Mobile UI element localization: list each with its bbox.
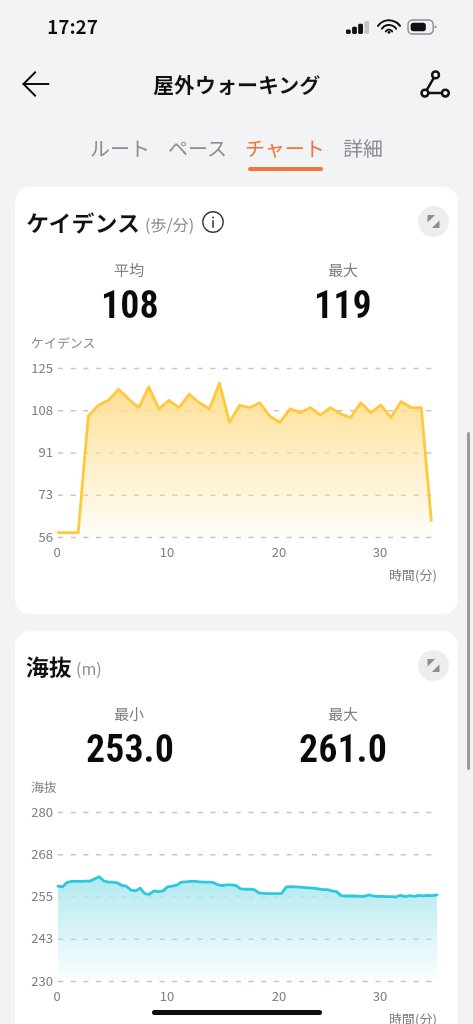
button[interactable]: 海抜 [15,631,458,1024]
button[interactable]: 詳細 [334,112,392,171]
button[interactable]: ペース [159,112,236,171]
staticText: 255 [23,886,53,905]
staticText: チャート [245,133,325,162]
staticText: 243 [23,928,53,947]
staticText: 詳細 [343,133,383,162]
button[interactable]: チャート [236,112,334,171]
staticText: 280 [23,802,53,821]
staticText: 0 [42,542,72,561]
staticText: 最大 [328,703,359,725]
button[interactable]: ケイデンス [15,187,458,614]
staticText: 最小 [114,703,145,725]
staticText: 最大 [328,259,359,281]
button[interactable]: Share [413,62,457,106]
staticText: 10 [152,986,182,1005]
staticText: 30 [365,986,395,1005]
staticText: 230 [23,971,53,990]
staticText: 時間(分) [389,565,437,584]
staticText: 56 [23,527,53,546]
staticText: ペース [168,133,227,162]
staticText: 平均 [114,259,145,281]
button[interactable]: Expand chart [418,650,449,681]
staticText: 73 [23,484,53,503]
staticText: (m) [76,656,102,679]
staticText: 253.0 [86,727,174,772]
staticText: ルート [90,133,150,162]
staticText: 268 [23,844,53,863]
staticText: 20 [264,986,294,1005]
staticText: 30 [365,542,395,561]
staticText: 20 [264,542,294,561]
staticText: ケイデンス [26,205,141,238]
staticText: 海抜 [31,777,58,796]
staticText: 屋外ウォーキング [153,69,321,99]
staticText: 108 [23,400,53,419]
staticText: 10 [152,542,182,561]
staticText: 海抜 [26,649,72,682]
staticText: ケイデンス [31,333,96,352]
staticText: 時間(分) [389,1009,437,1024]
button[interactable]: ルート [81,112,159,171]
staticText: 0 [42,986,72,1005]
staticText: (歩/分) [145,212,195,235]
button[interactable]: Expand chart [418,206,449,237]
button[interactable]: Info [201,210,225,234]
staticText: 119 [314,283,372,328]
staticText: 108 [101,283,159,328]
staticText: 17:27 [47,12,99,40]
staticText: 125 [23,358,53,377]
staticText: 91 [23,442,53,461]
button[interactable]: Back [12,60,60,108]
staticText: 261.0 [299,727,387,772]
